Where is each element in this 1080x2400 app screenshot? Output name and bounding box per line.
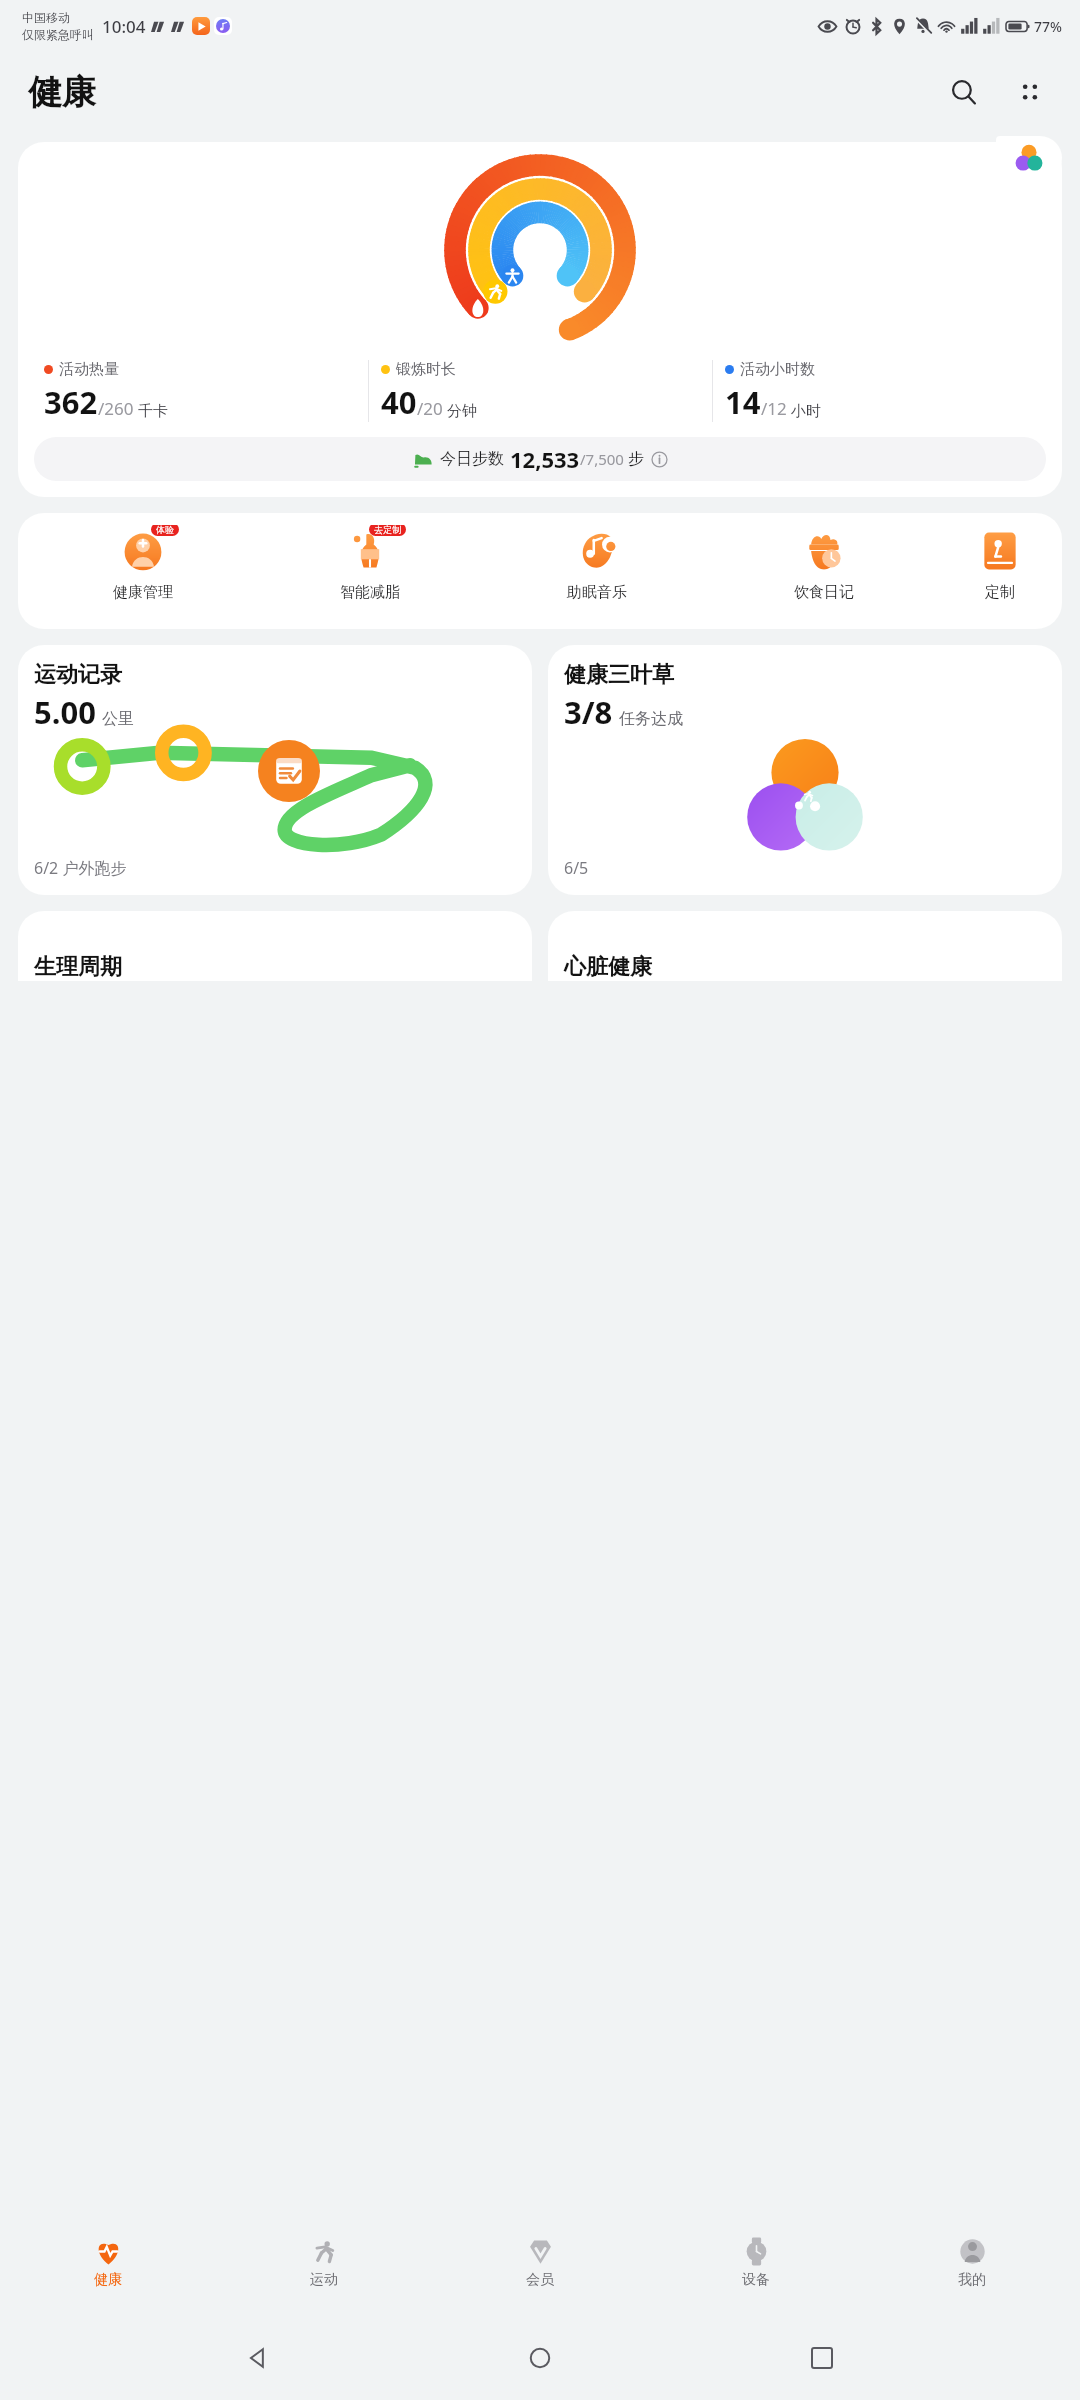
staticText: 运动记录 — [34, 661, 122, 689]
button[interactable]: 健康 — [0, 2210, 216, 2316]
staticText: /260 — [98, 397, 134, 420]
staticText: 定制 — [985, 583, 1015, 602]
button[interactable]: 今日步数 — [34, 437, 1046, 481]
staticText: 设备 — [742, 2271, 770, 2289]
staticText: 分钟 — [443, 400, 477, 420]
staticText: 362 — [44, 381, 98, 423]
staticText: 体验 — [156, 525, 174, 535]
button[interactable]: 我的 — [864, 2210, 1080, 2316]
staticText: 活动热量 — [59, 360, 119, 379]
button[interactable]: 运动 — [216, 2210, 432, 2316]
staticText: 6/2 户外跑步 — [34, 857, 127, 879]
button[interactable]: 助眠音乐 — [483, 525, 710, 602]
staticText: 锻炼时长 — [396, 360, 456, 379]
staticText: 我的 — [958, 2271, 986, 2289]
button[interactable]: 运动记录 — [18, 645, 532, 895]
staticText: 6/5 — [564, 857, 589, 879]
staticText: 小时 — [787, 400, 821, 420]
staticText: 活动小时数 — [740, 360, 815, 379]
staticText: 健康管理 — [113, 583, 173, 602]
button[interactable]: 体验 — [30, 525, 256, 602]
staticText: 心脏健康 — [564, 953, 652, 981]
button[interactable]: Tasks — [258, 740, 320, 802]
button[interactable]: 饮食日记 — [710, 525, 937, 602]
staticText: 任务达成 — [619, 709, 683, 729]
button[interactable]: 去定制 — [256, 525, 483, 602]
button[interactable]: 心脏健康 — [548, 911, 1062, 981]
staticText: 3/8 — [564, 691, 613, 733]
staticText: 5.00 — [34, 691, 96, 733]
staticText: 健康 — [28, 71, 96, 114]
staticText: 千卡 — [134, 400, 168, 420]
staticText: 仅限紧急呼叫 — [22, 27, 94, 42]
staticText: 今日步数 — [440, 449, 504, 469]
staticText: 公里 — [102, 709, 134, 729]
button[interactable]: Health clover — [996, 136, 1062, 180]
button[interactable]: 生理周期 — [18, 911, 532, 981]
button[interactable]: 定制 — [937, 525, 1062, 602]
staticText: /12 — [761, 397, 787, 420]
staticText: 饮食日记 — [794, 583, 854, 602]
staticText: 40 — [381, 381, 417, 423]
staticText: 10:04 — [102, 15, 146, 38]
staticText: 步 — [628, 449, 644, 469]
staticText: 生理周期 — [34, 953, 122, 981]
staticText: 77% — [1034, 17, 1062, 36]
staticText: 会员 — [526, 2271, 554, 2289]
staticText: 运动 — [310, 2271, 338, 2289]
button[interactable]: Home — [516, 2334, 564, 2382]
staticText: 健康 — [94, 2271, 122, 2289]
staticText: 健康三叶草 — [564, 661, 674, 689]
button[interactable]: Recents — [798, 2334, 846, 2382]
staticText: 中国移动 — [22, 10, 70, 25]
button[interactable]: 活动热量 — [18, 142, 1062, 497]
staticText: 12,533 — [510, 444, 580, 474]
button[interactable]: Search — [938, 66, 990, 118]
button[interactable]: More options — [1004, 66, 1056, 118]
staticText: 助眠音乐 — [567, 583, 627, 602]
staticText: /20 — [417, 397, 443, 420]
staticText: 去定制 — [374, 525, 401, 535]
staticText: 14 — [725, 381, 761, 423]
button[interactable]: 健康三叶草 — [548, 645, 1062, 895]
button[interactable]: 设备 — [648, 2210, 864, 2316]
staticText: /7,500 — [580, 449, 624, 469]
button[interactable]: 会员 — [432, 2210, 648, 2316]
button[interactable]: Back — [234, 2334, 282, 2382]
staticText: 智能减脂 — [340, 583, 400, 602]
